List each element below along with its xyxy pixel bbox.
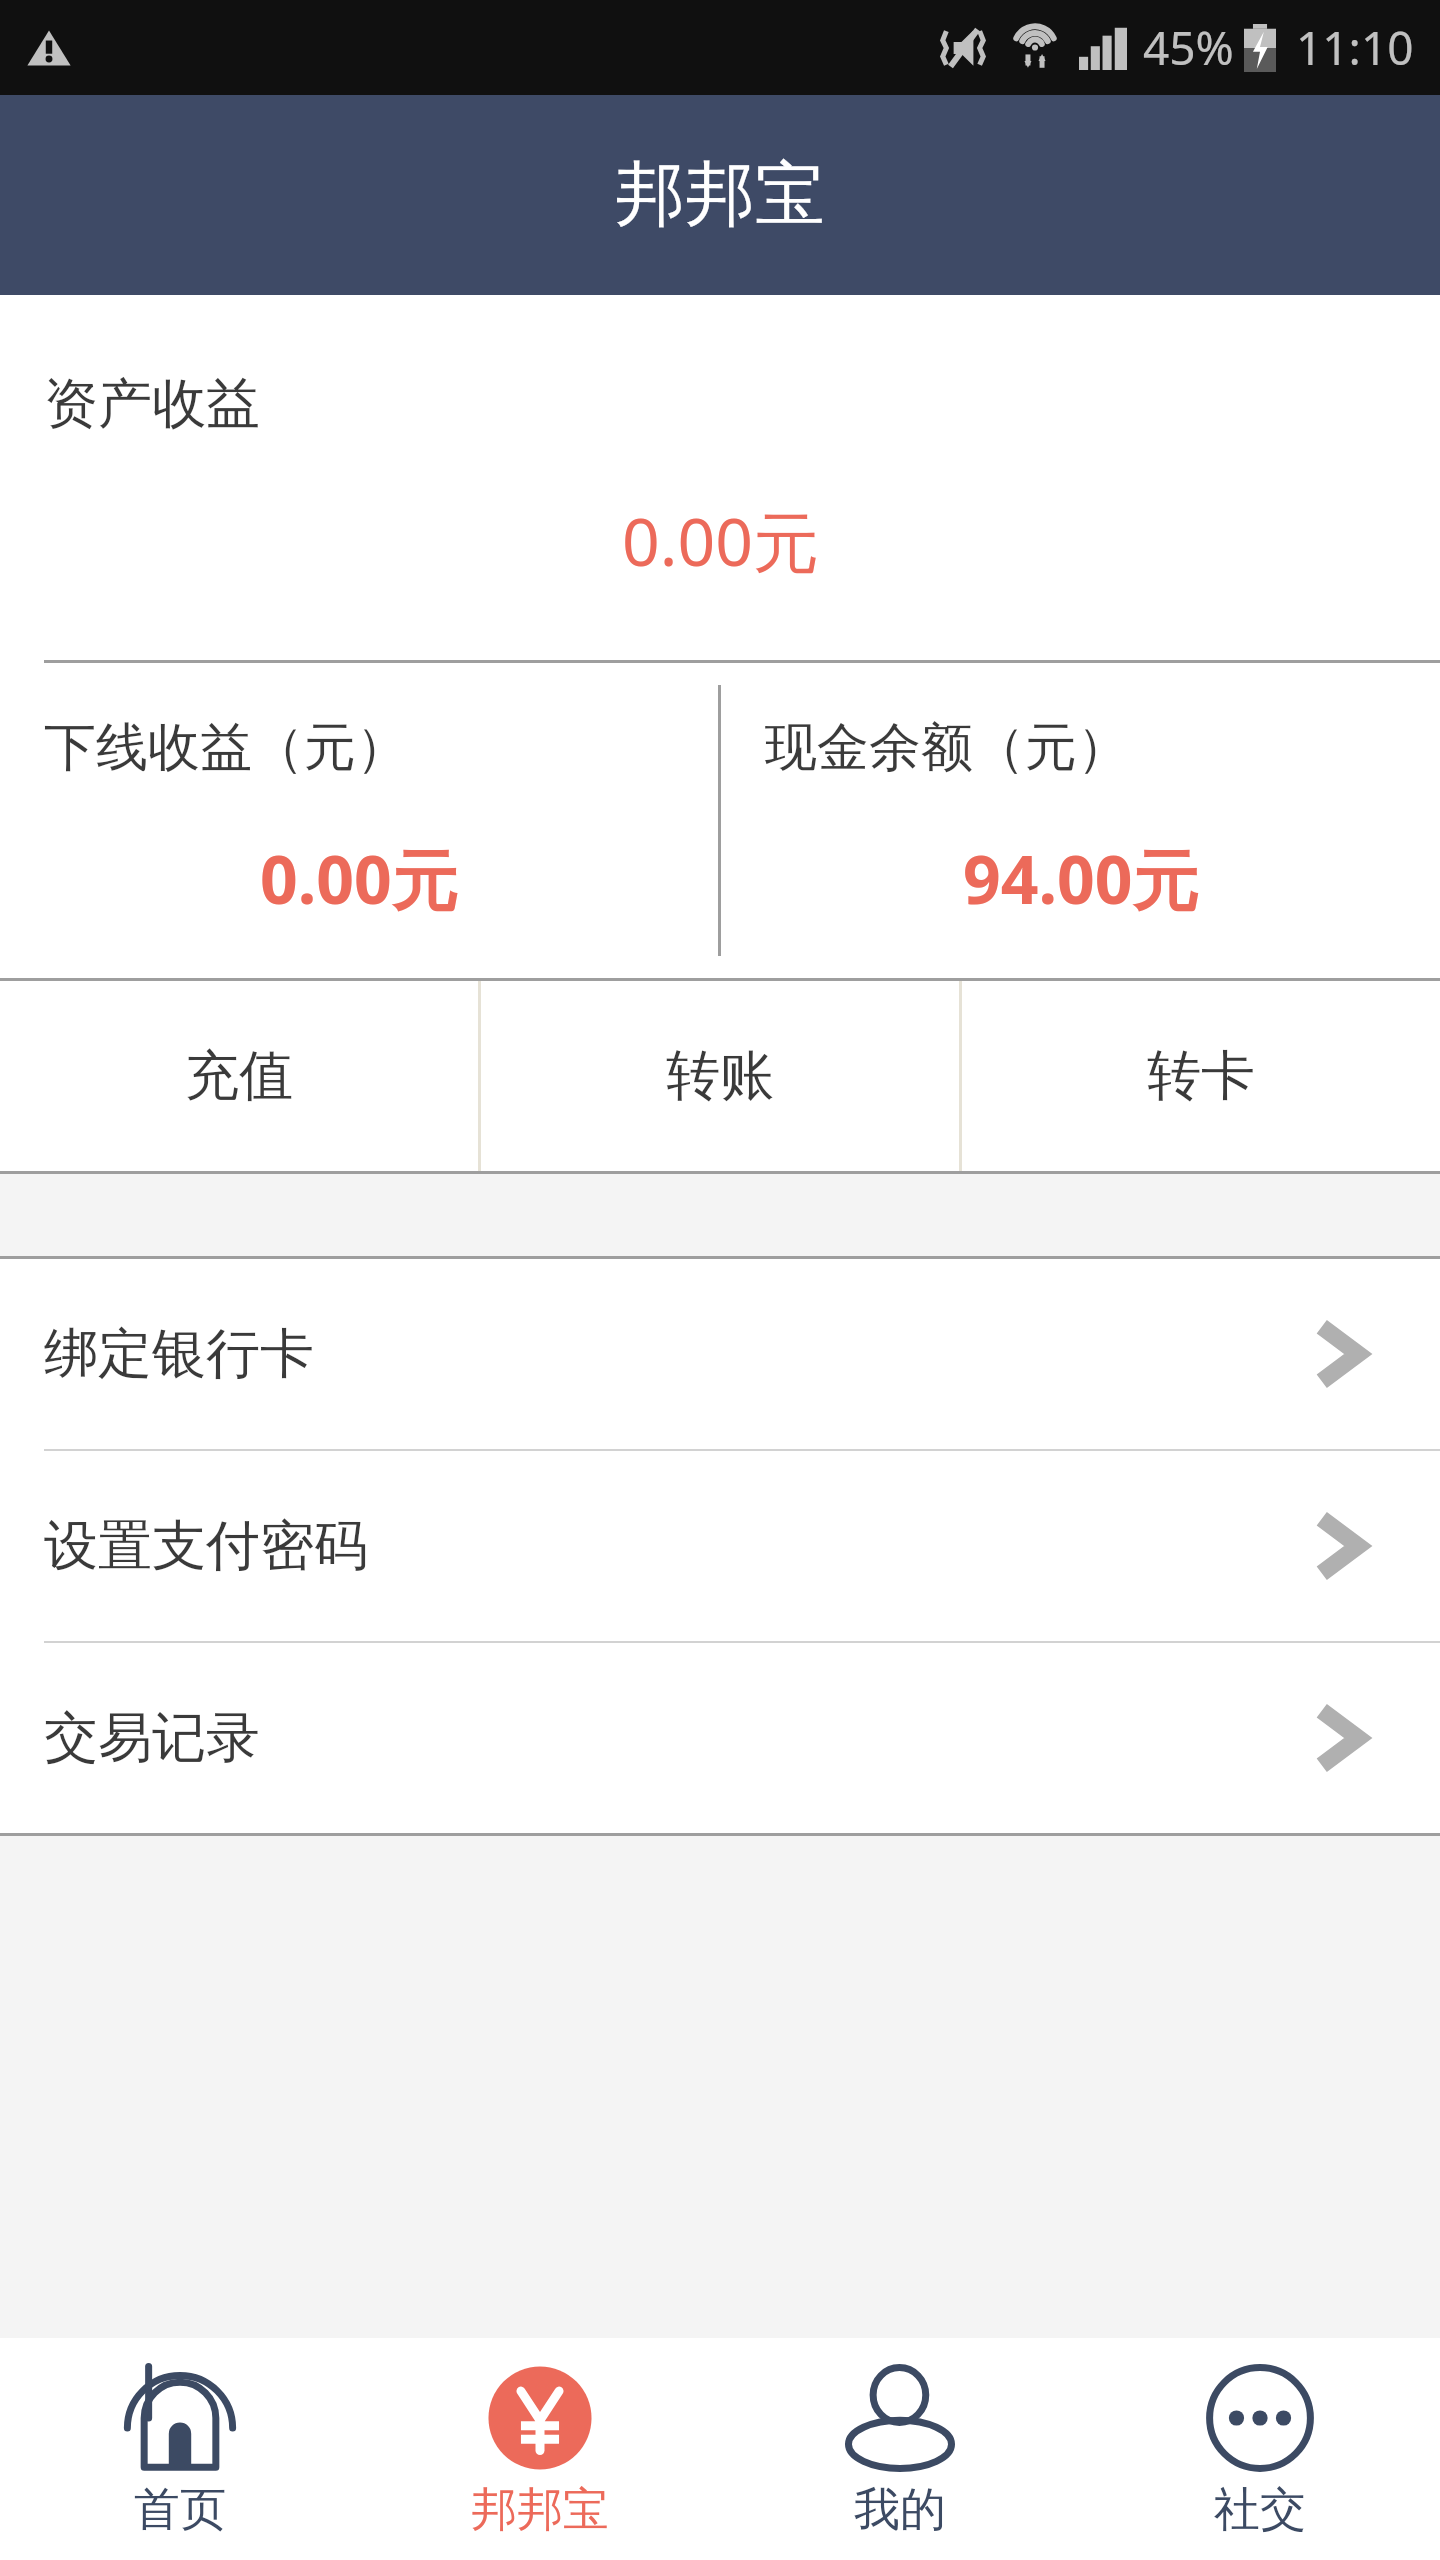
other: 邦邦宝 bbox=[484, 2362, 596, 2474]
staticText: 0.00元 bbox=[260, 833, 458, 923]
staticText: 转账 bbox=[666, 1042, 774, 1110]
staticText: 社交 bbox=[1214, 2481, 1306, 2539]
staticText: 充值 bbox=[185, 1042, 293, 1110]
staticText: 45% bbox=[1143, 16, 1234, 79]
staticText: 转卡 bbox=[1147, 1042, 1255, 1110]
button[interactable]: 充值 bbox=[0, 981, 478, 1171]
button[interactable]: 交易记录 bbox=[0, 1643, 1440, 1833]
staticText: 11:10 bbox=[1296, 16, 1414, 79]
staticText: 设置支付密码 bbox=[44, 1512, 368, 1580]
staticText: 首页 bbox=[134, 2481, 226, 2539]
button[interactable]: 绑定银行卡 bbox=[0, 1259, 1440, 1449]
button[interactable]: 我的 bbox=[720, 2338, 1080, 2560]
other: 我的 bbox=[844, 2362, 956, 2474]
staticText: 交易记录 bbox=[44, 1704, 260, 1772]
staticText: 资产收益 bbox=[44, 370, 260, 438]
other: 社交 bbox=[1204, 2362, 1316, 2474]
staticText: 94.00元 bbox=[963, 833, 1199, 923]
staticText: 现金余额（元） bbox=[765, 715, 1129, 781]
staticText: 邦邦宝 bbox=[615, 151, 825, 239]
button[interactable]: 转账 bbox=[481, 981, 959, 1171]
other: 首页 bbox=[124, 2362, 236, 2474]
staticText: 0.00元 bbox=[622, 495, 819, 585]
button[interactable]: 转卡 bbox=[962, 981, 1440, 1171]
button[interactable]: 设置支付密码 bbox=[0, 1451, 1440, 1641]
button[interactable]: 首页 bbox=[0, 2338, 360, 2560]
staticText: 邦邦宝 bbox=[471, 2481, 609, 2539]
staticText: 下线收益（元） bbox=[44, 715, 408, 781]
staticText: 绑定银行卡 bbox=[44, 1320, 314, 1388]
staticText: 我的 bbox=[854, 2481, 946, 2539]
button[interactable]: 邦邦宝 bbox=[360, 2338, 720, 2560]
button[interactable]: 社交 bbox=[1080, 2338, 1440, 2560]
